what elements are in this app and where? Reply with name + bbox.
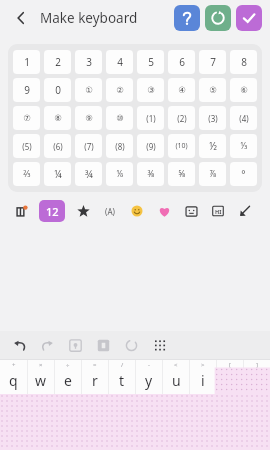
button[interactable]: Hearts [155,202,173,220]
button[interactable]: 4 [106,50,133,74]
staticText: q [9,371,18,390]
button[interactable]: ⅞ [199,162,226,186]
button[interactable]: Refresh [120,334,142,356]
staticText: ° [241,167,246,181]
button[interactable]: (10) [168,134,195,158]
button[interactable]: Arrows [236,202,254,220]
button[interactable]: Special characters [209,202,227,220]
button[interactable]: Emoji [128,202,146,220]
button[interactable]: Favorites [74,202,92,220]
button[interactable]: 12 [39,200,65,222]
button[interactable]: (8) [106,134,133,158]
button[interactable]: 5 [137,50,164,74]
button[interactable]: (9) [137,134,164,158]
button[interactable]: Help [174,5,200,31]
button[interactable]: ⑥ [230,78,257,102]
staticText: (10) [175,141,188,151]
button[interactable]: Back [6,3,36,33]
button[interactable]: ① [75,78,102,102]
staticText: ⅞ [209,168,217,180]
staticText: w [35,371,47,390]
staticText: < [174,361,178,369]
button[interactable]: Letters [101,202,119,220]
staticText: t [119,371,125,390]
button[interactable]: Confirm [236,5,262,31]
button[interactable]: ⅓ [230,134,257,158]
staticText: ② [116,85,124,95]
button[interactable]: (4) [230,106,257,130]
button[interactable]: 6 [168,50,195,74]
button[interactable]: < [163,360,189,394]
button[interactable]: 8 [230,50,257,74]
button[interactable]: ° [230,162,257,186]
button[interactable]: ] [244,360,270,394]
staticText: ½ [209,139,217,153]
button[interactable]: ⅜ [137,162,164,186]
staticText: ¾ [85,167,93,181]
staticText: = [93,361,97,369]
button[interactable]: ¼ [44,162,71,186]
staticText: ⑦ [23,113,31,123]
button[interactable]: (1) [137,106,164,130]
button[interactable]: Lock [64,334,86,356]
button[interactable]: ② [106,78,133,102]
button[interactable]: 3 [75,50,102,74]
button[interactable]: Delete [92,334,114,356]
button[interactable]: - [136,360,162,394]
staticText: 8 [241,55,247,69]
staticText: ④ [178,85,186,95]
staticText: - [148,361,150,369]
button[interactable]: ⅛ [106,162,133,186]
staticText: 12 [46,204,59,219]
button[interactable]: 7 [199,50,226,74]
button[interactable]: ⑦ [13,106,40,130]
button[interactable]: ④ [168,78,195,102]
staticText: u [172,371,181,390]
staticText: ⅝ [178,168,186,180]
button[interactable]: Add category [12,202,30,220]
staticText: 7 [210,55,216,69]
button[interactable]: ¾ [75,162,102,186]
button[interactable]: ⑩ [106,106,133,130]
staticText: / [121,361,124,369]
button[interactable]: (6) [44,134,71,158]
staticText: 9 [24,83,30,97]
button[interactable]: / [109,360,135,394]
button[interactable]: Kaomoji [182,202,200,220]
button[interactable]: 1 [13,50,40,74]
staticText: r [92,371,98,390]
button[interactable]: + [0,360,27,394]
staticText: e [64,371,72,390]
button[interactable]: × [28,360,54,394]
button[interactable]: ⅝ [168,162,195,186]
staticText: ] [256,361,258,369]
staticText: Make keyboard [40,9,138,27]
button[interactable]: = [82,360,108,394]
button[interactable]: Reset [205,5,231,31]
button[interactable]: ⑤ [199,78,226,102]
staticText: ⅛ [116,168,124,180]
staticText: 3 [86,55,92,69]
button[interactable]: ½ [199,134,226,158]
staticText: [ [229,361,231,369]
button[interactable]: > [190,360,216,394]
button[interactable]: 9 [13,78,40,102]
button[interactable]: 2 [44,50,71,74]
button[interactable]: ⑨ [75,106,102,130]
button[interactable]: ÷ [55,360,81,394]
staticText: (1) [146,113,156,124]
button[interactable]: ⅔ [13,162,40,186]
button[interactable]: [ [217,360,243,394]
button[interactable]: Keypad [148,334,170,356]
button[interactable]: Redo [36,334,58,356]
staticText: 2 [55,55,61,69]
button[interactable]: (5) [13,134,40,158]
button[interactable]: ⑧ [44,106,71,130]
button[interactable]: 0 [44,78,71,102]
button[interactable]: (3) [199,106,226,130]
staticText: ⑩ [116,113,124,123]
button[interactable]: (7) [75,134,102,158]
button[interactable]: (2) [168,106,195,130]
button[interactable]: Undo [8,334,30,356]
button[interactable]: ③ [137,78,164,102]
